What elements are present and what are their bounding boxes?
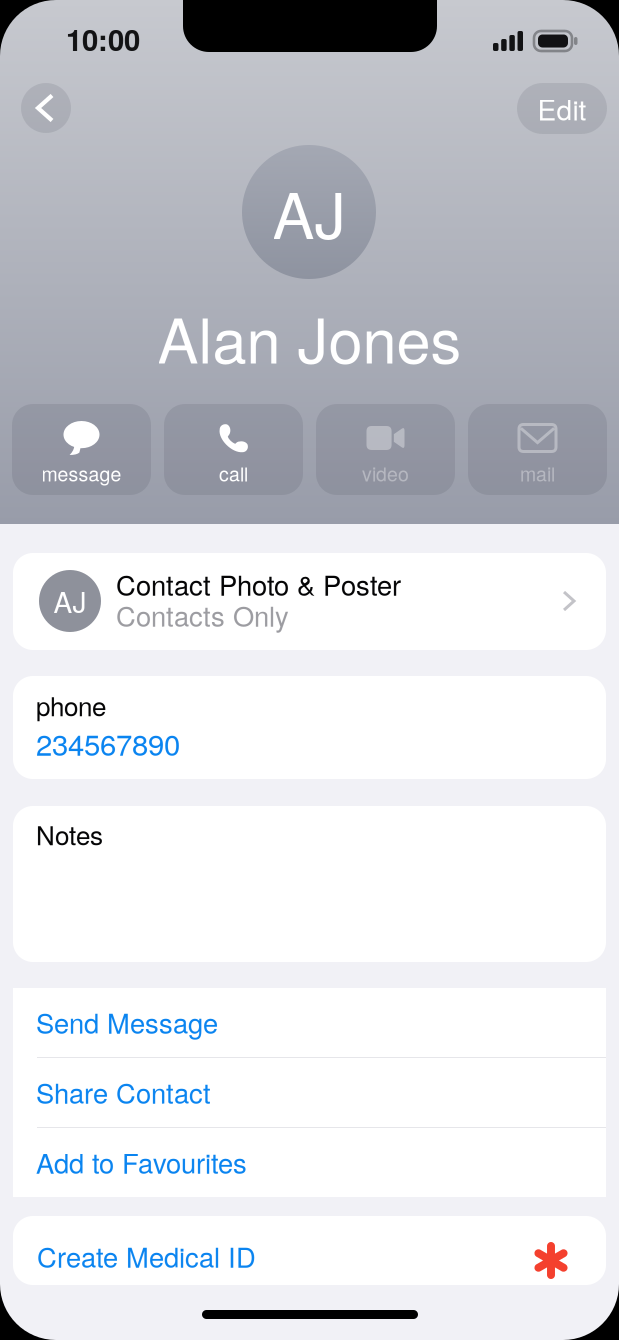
staticText: Add to Favourites	[36, 1142, 247, 1181]
staticText: Edit	[537, 88, 586, 129]
staticText: Notes	[36, 815, 103, 853]
staticText: mail	[520, 459, 555, 487]
button[interactable]: video	[316, 404, 455, 495]
staticText: Share Contact	[36, 1072, 211, 1111]
button[interactable]: AJ	[13, 553, 606, 650]
staticText: Contact Photo & Poster	[116, 564, 401, 603]
button[interactable]: Add to Favourites	[13, 1128, 606, 1197]
button[interactable]: Create Medical ID	[13, 1216, 606, 1285]
staticText: AJ	[272, 167, 345, 257]
button[interactable]: call	[164, 404, 303, 495]
staticText: Alan Jones	[157, 293, 461, 381]
staticText: call	[219, 459, 248, 487]
button[interactable]: message	[12, 404, 151, 495]
staticText: video	[362, 459, 409, 487]
staticText: 10:00	[66, 18, 140, 60]
button[interactable]: Send Message	[13, 988, 606, 1057]
button[interactable]: Edit	[517, 83, 607, 134]
staticText: Contacts Only	[116, 595, 289, 634]
button[interactable]: mail	[468, 404, 607, 495]
staticText: AJ	[53, 581, 86, 621]
button[interactable]: phone	[13, 676, 606, 779]
button[interactable]: Back	[21, 83, 71, 133]
staticText: Send Message	[36, 1002, 218, 1041]
staticText: Create Medical ID	[37, 1236, 256, 1275]
staticText: 234567890	[36, 722, 180, 764]
staticText: message	[41, 459, 121, 487]
staticText: phone	[36, 686, 106, 724]
button[interactable]: Share Contact	[13, 1058, 606, 1127]
